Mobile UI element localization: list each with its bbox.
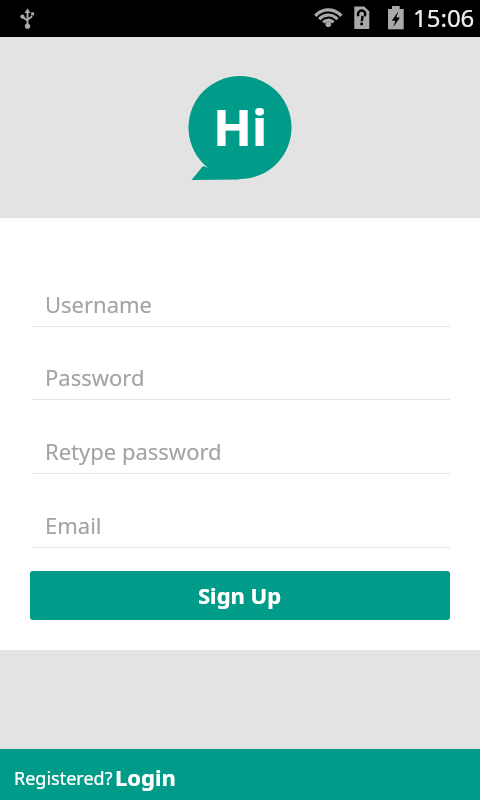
staticText: Retype password — [45, 436, 222, 466]
staticText: 15:06 — [413, 1, 475, 34]
staticText: Sign Up — [198, 580, 282, 610]
button[interactable]: Registered? — [0, 749, 480, 800]
button[interactable]: Retype password — [31, 435, 450, 474]
button[interactable]: Password — [31, 361, 450, 400]
button[interactable]: Email — [31, 509, 450, 548]
other: USB, Wi-Fi, SIM and battery status — [0, 0, 480, 37]
button[interactable]: Sign Up — [30, 571, 450, 620]
staticText: Username — [45, 289, 153, 319]
button[interactable]: Username — [31, 288, 450, 327]
staticText: Hi — [213, 91, 268, 160]
staticText: Login — [115, 762, 176, 792]
staticText: Email — [45, 510, 102, 540]
other: App logo — [186, 74, 298, 186]
staticText: Registered? — [14, 766, 113, 791]
staticText: Password — [45, 362, 145, 392]
